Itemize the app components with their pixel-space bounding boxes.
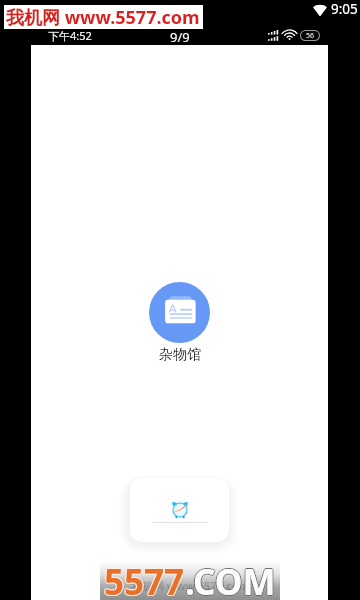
staticText: 5577 (105, 558, 186, 597)
button[interactable]: Alarm clock widget (130, 478, 229, 542)
staticText: .COM (184, 558, 275, 597)
staticText: .COM (185, 557, 276, 596)
staticText: 9:05 (331, 0, 358, 18)
staticText: .COM (185, 559, 276, 598)
staticText: 5577 (103, 558, 184, 597)
staticText: 9/9 (170, 28, 190, 46)
staticText: 我机网 www.5577.com (6, 5, 200, 29)
staticText: 杂物馆 (159, 346, 201, 364)
staticText: 5577 (104, 559, 185, 598)
staticText: 5577 (104, 557, 185, 596)
staticText: .COM (186, 558, 277, 597)
staticText: 下午4:52 (48, 28, 92, 43)
button[interactable]: 杂物馆 (149, 282, 210, 343)
staticText: 56 (306, 31, 315, 40)
staticText: 我机网 www.5577.com (131, 578, 250, 593)
staticText: .COM (185, 558, 276, 597)
staticText: 5577 (104, 558, 185, 597)
